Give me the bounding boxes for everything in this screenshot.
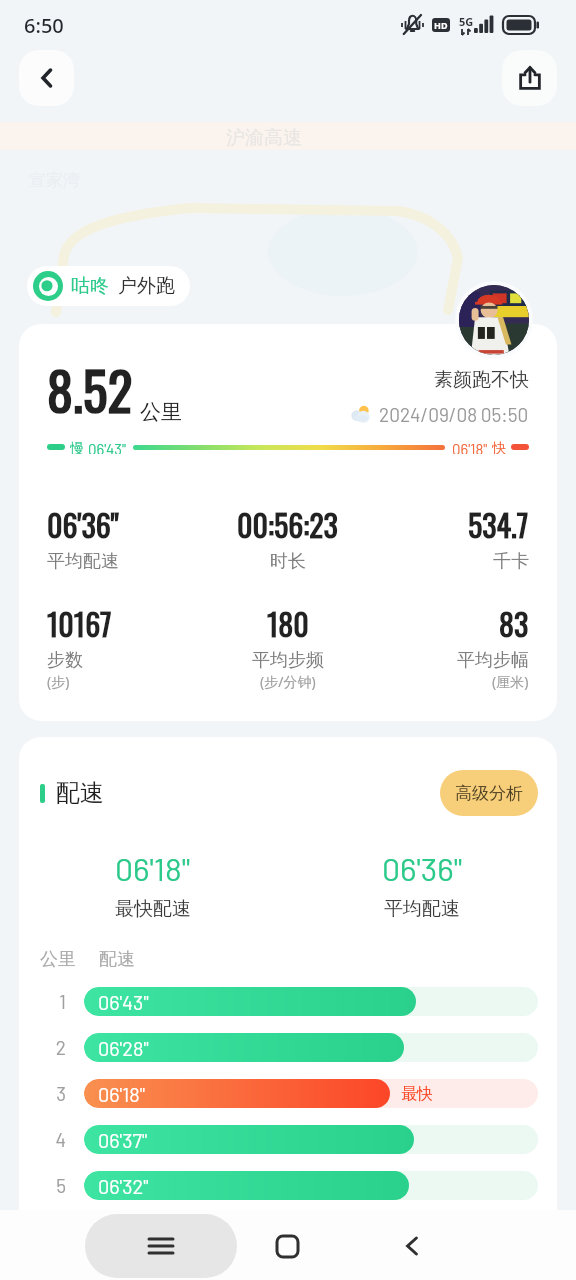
staticText: 时长 <box>270 550 306 573</box>
staticText: 6:50 <box>24 12 64 39</box>
staticText: 高级分析 <box>455 783 523 804</box>
staticText: 10167 <box>47 601 112 645</box>
staticText: 06'18" <box>98 1082 145 1106</box>
staticText: 534.7 <box>468 502 529 546</box>
staticText: 8.52 <box>47 351 133 428</box>
button[interactable]: Avatar <box>455 281 533 359</box>
staticText: 快 <box>492 440 506 454</box>
staticText: (步) <box>47 672 70 691</box>
staticText: 06'37" <box>98 1128 148 1152</box>
staticText: 06'18" <box>452 440 488 454</box>
staticText: 最快 <box>401 1084 433 1104</box>
staticText: 咕咚 <box>71 274 109 298</box>
staticText: 1 <box>40 990 66 1013</box>
staticText: 公里 <box>40 948 76 971</box>
staticText: 2024/09/08 05:50 <box>379 403 529 426</box>
staticText: 平均配速 <box>384 897 460 921</box>
button[interactable]: Menu <box>85 1214 237 1278</box>
staticText: 平均步幅 <box>457 649 529 672</box>
staticText: 180 <box>267 601 309 645</box>
staticText: 4 <box>40 1128 66 1151</box>
staticText: 素颜跑不快 <box>434 368 529 392</box>
staticText: 户外跑 <box>118 274 175 298</box>
button[interactable]: 高级分析 <box>440 770 538 816</box>
staticText: 00:56:23 <box>237 502 338 546</box>
staticText: 最快配速 <box>115 897 191 921</box>
staticText: 06'32" <box>98 1174 149 1198</box>
staticText: 06'18" <box>115 849 191 887</box>
staticText: (厘米) <box>492 672 529 691</box>
staticText: (步/分钟) <box>260 672 316 691</box>
staticText: 2 <box>40 1036 66 1059</box>
staticText: 配速 <box>56 778 104 808</box>
staticText: 配速 <box>99 948 135 971</box>
staticText: 沪渝高速 <box>226 126 302 150</box>
staticText: 06'43" <box>98 990 149 1014</box>
staticText: 平均步频 <box>252 649 324 672</box>
staticText: 5 <box>40 1174 66 1197</box>
staticText: 06'43" <box>88 440 126 454</box>
staticText: 83 <box>499 601 529 645</box>
staticText: 3 <box>40 1082 66 1105</box>
staticText: 公里 <box>140 399 182 425</box>
button[interactable]: Back <box>387 1221 437 1271</box>
button[interactable]: Home <box>262 1221 312 1271</box>
staticText: 步数 <box>47 649 83 672</box>
button[interactable]: 咕咚 <box>33 271 175 301</box>
staticText: 06'28" <box>98 1036 149 1060</box>
staticText: 平均配速 <box>47 550 119 573</box>
staticText: 06'36" <box>382 849 463 887</box>
staticText: 慢 <box>70 440 84 454</box>
staticText: HD <box>434 19 448 31</box>
staticText: 06'40" <box>98 1220 150 1244</box>
staticText: 千卡 <box>493 550 529 573</box>
staticText: 06'36" <box>47 502 119 546</box>
staticText: 5G <box>459 14 474 29</box>
button[interactable]: Back <box>19 50 74 106</box>
button[interactable]: Share <box>502 50 557 106</box>
